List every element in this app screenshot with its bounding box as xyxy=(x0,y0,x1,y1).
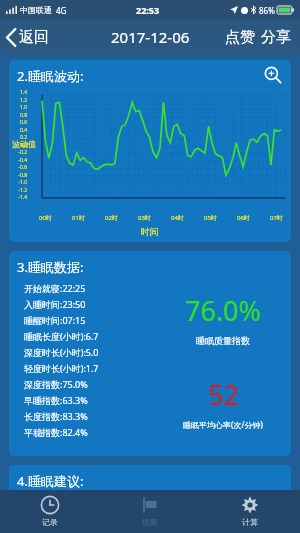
staticText: 4G xyxy=(56,5,67,16)
staticText: 长度指数:83.3% xyxy=(24,410,88,422)
button[interactable]: 点赞 xyxy=(222,24,258,51)
staticText: 0.0 xyxy=(12,142,27,149)
staticText: 睡眠长度(小时):6.7 xyxy=(24,330,99,342)
staticText: 波动值 xyxy=(12,139,36,149)
staticText: 22:53 xyxy=(136,4,160,16)
staticText: 分享 xyxy=(261,28,291,47)
staticText: 86% xyxy=(259,5,275,16)
staticText: 0.6 xyxy=(12,119,27,126)
staticText: 1.0 xyxy=(12,104,27,111)
staticText: -1.0 xyxy=(12,179,27,186)
staticText: 1.2 xyxy=(12,97,27,104)
staticText: 05时 xyxy=(204,214,217,222)
staticText: 0.8 xyxy=(12,112,27,119)
staticText: 提醒 xyxy=(142,517,158,527)
staticText: 深度指数:75.0% xyxy=(24,378,88,390)
staticText: -1.2 xyxy=(12,187,27,194)
staticText: 2.睡眠波动: xyxy=(17,67,84,85)
staticText: 1.4 xyxy=(12,89,27,96)
staticText: 早睡指数:63.3% xyxy=(24,394,88,406)
staticText: -0.4 xyxy=(12,157,27,164)
staticText: 00时 xyxy=(39,214,52,222)
staticText: -0.8 xyxy=(12,172,27,179)
button[interactable]: 分享 xyxy=(258,24,294,51)
staticText: 03时 xyxy=(138,214,151,222)
staticText: 0.4 xyxy=(12,127,27,134)
button[interactable]: 计算 xyxy=(200,490,300,533)
staticText: -1.4 xyxy=(12,194,27,201)
staticText: 4.睡眠建议: xyxy=(17,472,84,490)
staticText: 04时 xyxy=(171,214,184,222)
staticText: 入睡时间:23:50 xyxy=(24,298,86,310)
staticText: 52 xyxy=(208,376,239,413)
staticText: 0.2 xyxy=(12,134,27,141)
staticText: 中国联通 xyxy=(20,5,52,15)
staticText: 07时 xyxy=(270,214,283,222)
staticText: 时间 xyxy=(141,226,159,237)
staticText: 76.0% xyxy=(185,292,262,329)
button[interactable]: 返回 xyxy=(0,24,57,51)
staticText: 01时 xyxy=(72,214,85,222)
staticText: 平稳指数:82.4% xyxy=(24,426,88,438)
staticText: 睡眠平均心率(次/分钟) xyxy=(183,419,263,430)
staticText: 点赞 xyxy=(225,28,255,47)
staticText: 睡眠质量指数 xyxy=(196,335,250,346)
staticText: 3.睡眠数据: xyxy=(17,258,84,276)
staticText: 计算 xyxy=(242,517,258,527)
button[interactable]: Zoom xyxy=(263,65,283,85)
staticText: -0.6 xyxy=(12,164,27,171)
staticText: 轻度时长(小时):1.7 xyxy=(24,362,99,374)
staticText: 02时 xyxy=(105,214,118,222)
button[interactable]: 记录 xyxy=(0,490,100,533)
staticText: 睡醒时间:07:15 xyxy=(24,314,86,326)
staticText: 记录 xyxy=(42,517,58,527)
staticText: 2017-12-06 xyxy=(111,27,190,47)
staticText: 返回 xyxy=(19,28,49,47)
staticText: 深度时长(小时):5.0 xyxy=(24,346,99,358)
staticText: 开始就寝:22:25 xyxy=(24,282,86,294)
button[interactable]: 提醒 xyxy=(100,490,200,533)
staticText: 06时 xyxy=(237,214,250,222)
staticText: -0.2 xyxy=(12,149,27,156)
